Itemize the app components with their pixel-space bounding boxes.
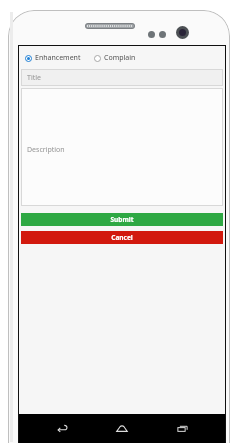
staticText: Title — [27, 73, 41, 83]
button[interactable]: Description — [21, 88, 223, 206]
button[interactable]: Cancel — [21, 231, 223, 244]
button[interactable]: Submit — [21, 213, 223, 226]
staticText: Cancel — [111, 233, 133, 242]
button[interactable]: Home — [105, 414, 139, 443]
staticText: Description — [27, 145, 65, 155]
button[interactable]: Back — [45, 414, 79, 443]
button[interactable]: Title — [21, 69, 223, 86]
staticText: Enhancement — [35, 53, 81, 63]
staticText: Complain — [104, 53, 136, 63]
staticText: Submit — [110, 215, 134, 224]
button[interactable]: Enhancement — [24, 50, 82, 66]
button[interactable]: Recent apps — [165, 414, 199, 443]
button[interactable]: Complain — [93, 50, 137, 66]
